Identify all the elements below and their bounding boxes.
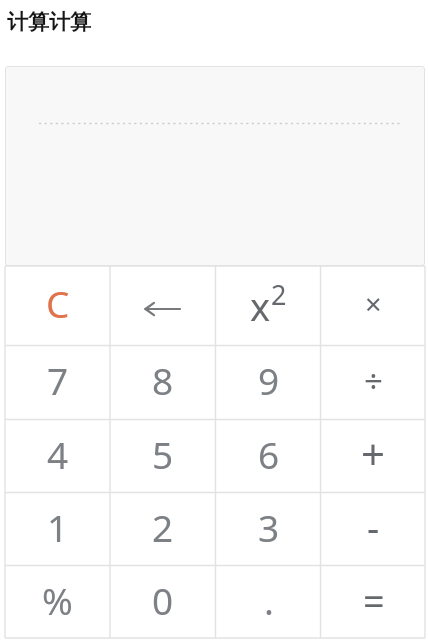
staticText: +: [361, 425, 386, 482]
button[interactable]: ÷: [321, 346, 426, 420]
button[interactable]: [110, 266, 216, 346]
staticText: 5: [152, 429, 174, 479]
staticText: 7: [47, 355, 69, 405]
button[interactable]: x: [216, 266, 321, 346]
staticText: ÷: [364, 358, 383, 403]
staticText: 2: [152, 502, 174, 552]
staticText: C: [46, 278, 70, 328]
staticText: %: [42, 575, 73, 625]
button[interactable]: 8: [110, 346, 216, 420]
staticText: 6: [258, 429, 280, 479]
staticText: 3: [258, 502, 280, 552]
staticText: 4: [47, 429, 69, 479]
button[interactable]: =: [321, 566, 426, 639]
button[interactable]: 5: [110, 420, 216, 493]
staticText: 2: [271, 276, 287, 313]
button[interactable]: 0: [110, 566, 216, 639]
button[interactable]: 9: [216, 346, 321, 420]
button[interactable]: +: [321, 420, 426, 493]
staticText: .: [264, 575, 274, 625]
staticText: x: [250, 280, 271, 332]
staticText: =: [363, 574, 385, 626]
button[interactable]: 7: [5, 346, 110, 420]
button[interactable]: 4: [5, 420, 110, 493]
button[interactable]: -: [321, 493, 426, 566]
button[interactable]: 6: [216, 420, 321, 493]
button[interactable]: 3: [216, 493, 321, 566]
staticText: -: [367, 501, 380, 553]
staticText: 计算计算: [7, 9, 91, 35]
staticText: 9: [258, 355, 280, 405]
button[interactable]: C: [5, 266, 110, 346]
staticText: 8: [152, 355, 174, 405]
button[interactable]: 1: [5, 493, 110, 566]
button[interactable]: .: [216, 566, 321, 639]
button[interactable]: ×: [321, 266, 426, 346]
staticText: 0: [152, 575, 174, 625]
button[interactable]: %: [5, 566, 110, 639]
button[interactable]: 2: [110, 493, 216, 566]
staticText: 1: [47, 502, 69, 552]
staticText: ×: [365, 284, 382, 323]
